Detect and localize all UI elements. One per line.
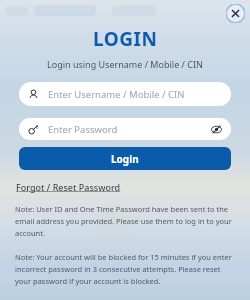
button[interactable]: Forgot / Reset Password	[16, 181, 121, 193]
button[interactable]: Show password	[210, 123, 223, 136]
staticText: Forgot / Reset Password	[16, 181, 121, 193]
button[interactable]: Close	[226, 4, 245, 23]
staticText: LOGIN	[93, 26, 158, 52]
staticText: Note: Your account will be blocked for 1…	[15, 252, 235, 287]
button[interactable]: Enter Password	[19, 118, 231, 140]
button[interactable]: Enter Username / Mobile / CIN	[19, 82, 231, 106]
staticText: Note: User ID and One Time Password have…	[15, 204, 235, 239]
staticText: Enter Password	[48, 123, 210, 136]
button[interactable]: Login	[19, 147, 231, 170]
staticText: Login	[111, 152, 139, 166]
staticText: Login using Username / Mobile / CIN	[47, 58, 203, 70]
staticText: Enter Username / Mobile / CIN	[48, 88, 185, 101]
